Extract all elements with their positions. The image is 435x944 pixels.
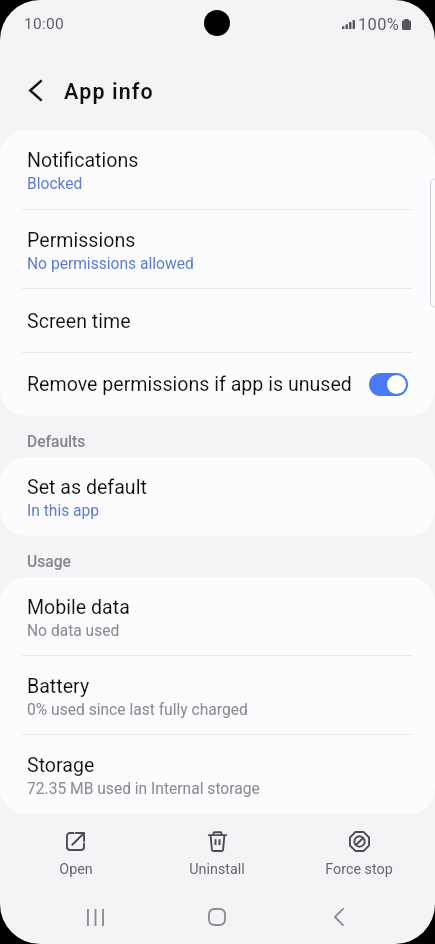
button[interactable]: Uninstall [146,818,288,890]
staticText: 0% used since last fully charged [27,701,248,719]
staticText: Set as default [27,476,147,499]
button[interactable]: Storage [0,735,435,814]
button[interactable]: Set as default [0,457,435,536]
staticText: Screen time [27,310,131,333]
staticText: Usage [27,553,71,571]
button[interactable]: Remove permissions if app is unused [0,353,435,416]
staticText: 10:00 [24,15,65,33]
staticText: In this app [27,502,100,520]
staticText: Permissions [27,229,136,252]
staticText: 72.35 MB used in Internal storage [27,780,260,798]
staticText: Remove permissions if app is unused [27,373,361,396]
button[interactable]: Battery [0,656,435,735]
button[interactable]: Force stop [288,818,430,890]
button[interactable]: Recents [35,894,156,940]
button[interactable]: Back [278,894,400,940]
staticText: App info [64,79,154,104]
staticText: No data used [27,622,120,640]
staticText: Storage [27,754,95,777]
staticText: Uninstall [189,861,245,878]
staticText: Open [59,861,93,878]
staticText: 100% [358,15,400,34]
button[interactable]: Open [5,818,146,890]
staticText: Notifications [27,149,139,172]
staticText: Defaults [27,433,86,451]
staticText: Blocked [27,175,83,193]
button[interactable]: Mobile data [0,577,435,656]
button[interactable]: Navigate up [17,72,54,109]
button[interactable]: Screen time [0,289,435,353]
staticText: Mobile data [27,596,130,619]
staticText: No permissions allowed [27,255,194,273]
button[interactable]: Permissions [0,210,435,289]
button[interactable]: Notifications [0,130,435,210]
staticText: Battery [27,675,90,698]
button[interactable]: Home [156,894,278,940]
staticText: Force stop [325,861,393,878]
